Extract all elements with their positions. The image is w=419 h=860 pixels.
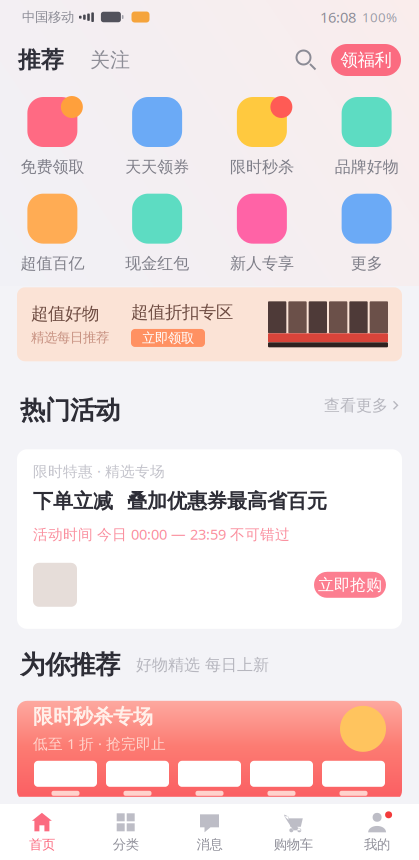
staticText: 100% <box>362 8 397 26</box>
button[interactable]: 搜索 <box>291 45 321 75</box>
staticText: 精选每日推荐 <box>31 329 109 346</box>
staticText: 中国移动 <box>22 9 74 25</box>
staticText: 下单立减 <box>33 489 113 513</box>
staticText: 限时秒杀专场 <box>33 704 153 729</box>
staticText: 领福利 <box>340 49 391 71</box>
button[interactable]: 推荐 <box>18 46 64 74</box>
button[interactable]: 免费领取 <box>0 96 105 177</box>
button[interactable]: 消息 <box>168 804 251 860</box>
staticText: 超值折扣专区 <box>131 302 233 323</box>
staticText: 查看更多 <box>324 395 388 415</box>
button[interactable]: 我的 <box>335 804 419 860</box>
staticText: 叠加优惠券最高省百元 <box>127 489 327 513</box>
button[interactable]: 限时秒杀 <box>209 96 314 177</box>
staticText: 立即领取 <box>142 330 194 346</box>
button[interactable]: 首页 <box>0 804 84 860</box>
button[interactable]: 限时特惠 · 精选专场 <box>0 449 419 629</box>
button[interactable]: 限时秒杀专场 <box>0 701 419 801</box>
staticText: 消息 <box>196 836 222 853</box>
button[interactable]: 现金红包 <box>105 193 210 273</box>
staticText: 新人专享 <box>230 254 294 273</box>
button[interactable]: 更多 <box>314 193 419 273</box>
staticText: 低至 1 折 · 抢完即止 <box>33 734 166 753</box>
button[interactable]: 领福利 <box>321 44 401 76</box>
staticText: 现金红包 <box>125 254 189 273</box>
staticText: 天天领券 <box>125 157 189 177</box>
staticText: 分类 <box>113 836 139 853</box>
button[interactable]: 查看更多 <box>324 395 399 415</box>
staticText: 限时秒杀 <box>230 157 294 177</box>
button[interactable]: 超值好物 <box>0 287 419 361</box>
button[interactable]: 品牌好物 <box>314 96 419 177</box>
staticText: 立即抢购 <box>318 575 382 595</box>
staticText: 品牌好物 <box>335 157 399 177</box>
staticText: 活动时间 今日 00:00 — 23:59 不可错过 <box>33 524 290 544</box>
staticText: 推荐 <box>18 46 64 74</box>
staticText: 为你推荐 <box>20 649 120 680</box>
staticText: 超值好物 <box>31 303 99 324</box>
staticText: 好物精选 每日上新 <box>136 655 269 675</box>
staticText: 更多 <box>351 254 383 273</box>
button[interactable]: 新人专享 <box>209 193 314 273</box>
button[interactable]: 超值百亿 <box>0 193 105 273</box>
staticText: 16:08 <box>320 7 356 27</box>
staticText: 首页 <box>29 836 55 853</box>
staticText: 免费领取 <box>20 157 84 177</box>
staticText: 关注 <box>90 48 130 72</box>
button[interactable]: 关注 <box>64 48 130 72</box>
staticText: 超值百亿 <box>20 254 84 273</box>
staticText: 我的 <box>364 836 390 853</box>
staticText: 限时特惠 · 精选专场 <box>33 461 165 481</box>
staticText: 热门活动 <box>20 395 120 426</box>
staticText: 购物车 <box>274 836 313 853</box>
button[interactable]: 分类 <box>84 804 168 860</box>
button[interactable]: 天天领券 <box>105 96 210 177</box>
button[interactable]: 购物车 <box>251 804 335 860</box>
